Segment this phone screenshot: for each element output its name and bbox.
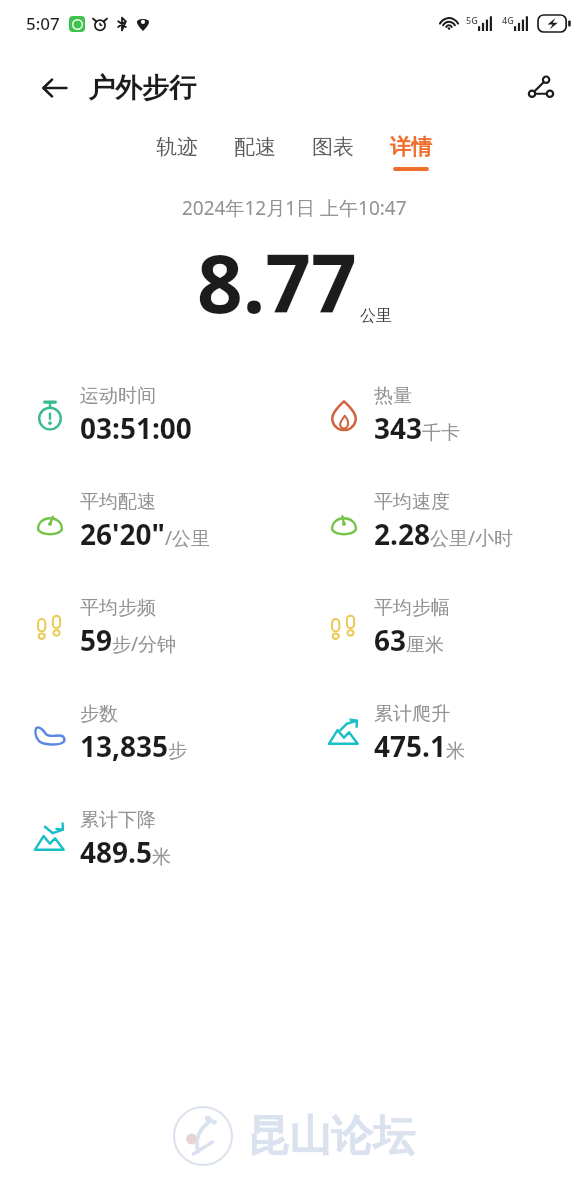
button[interactable]: 步数 xyxy=(0,680,294,786)
button[interactable]: 配速 xyxy=(216,130,294,175)
button[interactable]: 累计爬升 xyxy=(294,680,588,786)
staticText: 8.77 xyxy=(197,227,357,336)
staticText: 公里 xyxy=(360,306,392,326)
staticText: 5G xyxy=(466,14,478,26)
button[interactable]: 详情 xyxy=(372,130,450,175)
staticText: 59步/分钟 xyxy=(80,621,177,659)
button[interactable]: 分享 xyxy=(516,63,566,113)
staticText: 运动时间 xyxy=(80,384,156,408)
button[interactable]: 轨迹 xyxy=(138,130,216,175)
staticText: 轨迹 xyxy=(156,134,198,160)
staticText: 475.1米 xyxy=(374,727,465,765)
button[interactable]: 平均步频 xyxy=(0,574,294,680)
staticText: 累计下降 xyxy=(80,808,156,832)
staticText: 5:07 xyxy=(26,12,60,35)
staticText: 热量 xyxy=(374,384,412,408)
staticText: 累计爬升 xyxy=(374,702,450,726)
staticText: 户外步行 xyxy=(88,71,196,105)
staticText: 03:51:00 xyxy=(80,409,192,447)
staticText: 平均步幅 xyxy=(374,596,450,620)
button[interactable]: 平均速度 xyxy=(294,468,588,574)
button[interactable]: 平均步幅 xyxy=(294,574,588,680)
staticText: 2024年12月1日 上午10:47 xyxy=(182,195,407,221)
staticText: 步数 xyxy=(80,702,118,726)
staticText: 63厘米 xyxy=(374,621,445,659)
button[interactable]: 返回 xyxy=(32,65,78,111)
staticText: 489.5米 xyxy=(80,833,171,871)
staticText: 详情 xyxy=(390,134,432,160)
button[interactable]: 图表 xyxy=(294,130,372,175)
staticText: 配速 xyxy=(234,134,276,160)
staticText: 平均速度 xyxy=(374,490,450,514)
button[interactable]: 运动时间 xyxy=(0,362,294,468)
staticText: 平均配速 xyxy=(80,490,156,514)
staticText: 13,835步 xyxy=(80,727,188,765)
button[interactable]: 累计下降 xyxy=(0,786,294,892)
staticText: 平均步频 xyxy=(80,596,156,620)
staticText: 343千卡 xyxy=(374,409,461,447)
button[interactable]: 平均配速 xyxy=(0,468,294,574)
staticText: 昆山论坛 xyxy=(247,1110,415,1163)
staticText: 4G xyxy=(502,14,514,26)
button[interactable]: 热量 xyxy=(294,362,588,468)
staticText: 26'20"/公里 xyxy=(80,515,210,553)
staticText: 图表 xyxy=(312,134,354,160)
staticText: 2.28公里/小时 xyxy=(374,515,513,553)
